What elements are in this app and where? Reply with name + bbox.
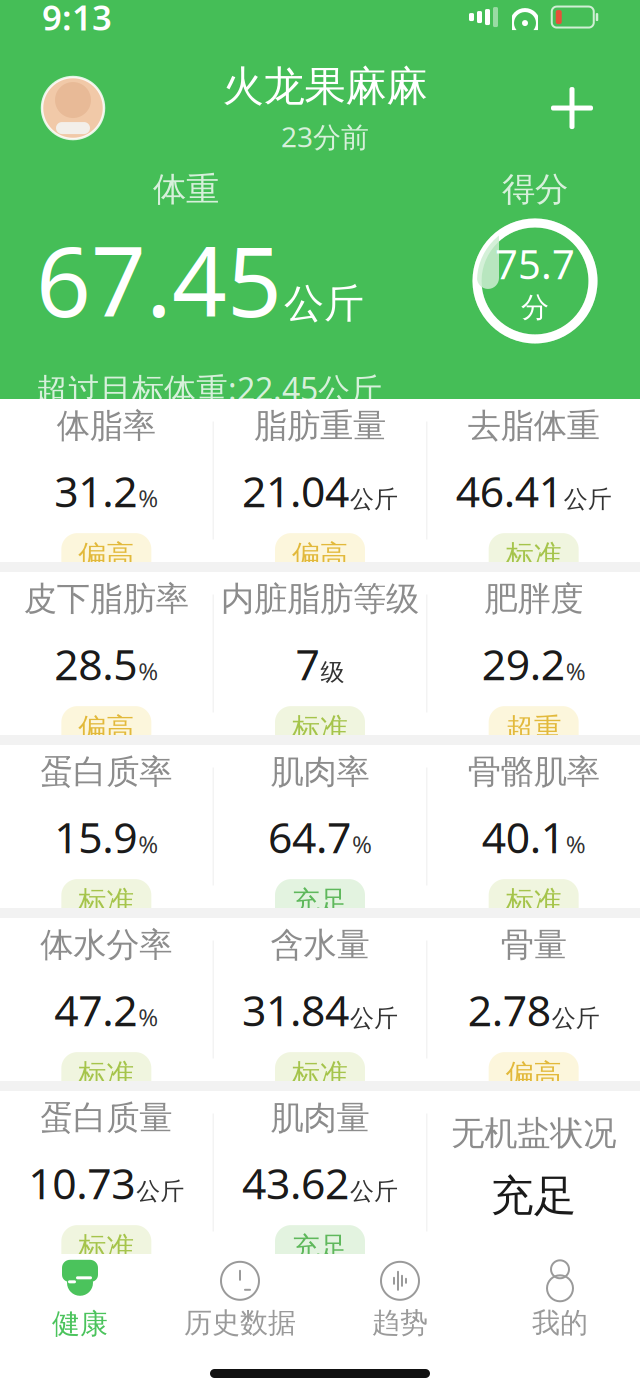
staticText: 40.1 xyxy=(482,808,565,865)
staticText: 公斤 xyxy=(564,485,612,514)
staticText: 偏高 xyxy=(506,1057,562,1091)
staticText: % xyxy=(138,482,158,514)
staticText: 公斤 xyxy=(350,1004,398,1033)
button[interactable]: 骨骼肌率 xyxy=(427,745,640,908)
staticText: 内脏脂肪等级 xyxy=(221,578,419,619)
staticText: 31.84 xyxy=(242,981,349,1038)
staticText: 75.7 xyxy=(495,237,575,290)
staticText: 标准 xyxy=(78,1230,134,1264)
button[interactable]: 去脂体重 xyxy=(427,399,640,562)
staticText: 脂肪重量 xyxy=(254,405,386,446)
staticText: 历史数据 xyxy=(184,1306,296,1340)
staticText: % xyxy=(138,828,158,860)
button[interactable]: 趋势 xyxy=(320,1254,480,1346)
staticText: 蛋白质率 xyxy=(40,751,172,792)
button[interactable]: 肌肉率 xyxy=(214,745,426,908)
staticText: 肌肉率 xyxy=(270,751,369,792)
staticText: 超过目标体重:22.45公斤 xyxy=(36,367,382,410)
staticText: 2.78 xyxy=(468,981,551,1038)
staticText: 超重 xyxy=(506,711,562,745)
staticText: 骨骼肌率 xyxy=(468,751,600,792)
staticText: 公斤 xyxy=(350,1177,398,1206)
staticText: 趋势 xyxy=(372,1306,428,1340)
staticText: 28.5 xyxy=(54,635,137,692)
staticText: 无机盐状况 xyxy=(451,1113,616,1154)
staticText: % xyxy=(138,1001,158,1033)
staticText: 21.04 xyxy=(242,462,349,519)
staticText: 体脂率 xyxy=(57,405,156,446)
staticText: 体水分率 xyxy=(40,924,172,965)
staticText: 火龙果麻麻 xyxy=(222,61,427,112)
button[interactable]: 肌肉量 xyxy=(214,1091,426,1254)
staticText: 67.45 xyxy=(36,216,282,343)
staticText: 去脂体重 xyxy=(468,405,600,446)
staticText: 充足 xyxy=(491,1170,577,1222)
button[interactable]: 健康 xyxy=(0,1254,160,1346)
staticText: 标准 xyxy=(292,711,348,745)
staticText: 标准 xyxy=(78,1057,134,1091)
staticText: 公斤 xyxy=(136,1177,184,1206)
staticText: 分 xyxy=(521,290,549,325)
staticText: 7 xyxy=(295,635,319,692)
staticText: 公斤 xyxy=(552,1004,600,1033)
staticText: 46.41 xyxy=(456,462,563,519)
staticText: 15.9 xyxy=(54,808,137,865)
staticText: 标准 xyxy=(506,538,562,572)
staticText: 偏高 xyxy=(78,711,134,745)
staticText: 标准 xyxy=(292,1057,348,1091)
button[interactable]: 添加 xyxy=(544,80,600,136)
button[interactable]: 体脂率 xyxy=(0,399,213,562)
staticText: 偏高 xyxy=(292,538,348,572)
button[interactable]: 蛋白质率 xyxy=(0,745,213,908)
staticText: 29.2 xyxy=(482,635,565,692)
staticText: 10.73 xyxy=(28,1154,135,1211)
staticText: 得分 xyxy=(502,169,568,210)
staticText: 充足 xyxy=(292,884,348,918)
button[interactable]: 蛋白质量 xyxy=(0,1091,213,1254)
staticText: 我的 xyxy=(532,1306,588,1340)
staticText: 23分前 xyxy=(281,118,369,155)
staticText: % xyxy=(352,828,372,860)
staticText: 含水量 xyxy=(270,924,369,965)
button[interactable]: 肥胖度 xyxy=(427,572,640,735)
staticText: 充足 xyxy=(292,1230,348,1264)
button[interactable]: 我的 xyxy=(480,1254,640,1346)
staticText: % xyxy=(138,655,158,687)
staticText: 级 xyxy=(320,658,344,687)
button[interactable]: 含水量 xyxy=(214,918,426,1081)
staticText: 47.2 xyxy=(54,981,137,1038)
staticText: % xyxy=(566,655,586,687)
staticText: 31.2 xyxy=(54,462,137,519)
button[interactable]: 皮下脂肪率 xyxy=(0,572,213,735)
button[interactable]: 历史数据 xyxy=(160,1254,320,1346)
staticText: % xyxy=(566,828,586,860)
staticText: 骨量 xyxy=(501,924,567,965)
staticText: 皮下脂肪率 xyxy=(24,578,189,619)
staticText: 64.7 xyxy=(268,808,351,865)
staticText: 标准 xyxy=(506,884,562,918)
staticText: 公斤 xyxy=(350,485,398,514)
staticText: 蛋白质量 xyxy=(40,1097,172,1138)
staticText: 9:13 xyxy=(42,0,112,40)
button[interactable]: 骨量 xyxy=(427,918,640,1081)
button[interactable]: 内脏脂肪等级 xyxy=(214,572,426,735)
staticText: 偏高 xyxy=(78,538,134,572)
button[interactable]: 脂肪重量 xyxy=(214,399,426,562)
button[interactable]: 无机盐状况 xyxy=(427,1091,640,1254)
staticText: 肥胖度 xyxy=(484,578,583,619)
button[interactable]: 体水分率 xyxy=(0,918,213,1081)
staticText: 肌肉量 xyxy=(270,1097,369,1138)
staticText: 43.62 xyxy=(242,1154,349,1211)
staticText: 公斤 xyxy=(284,279,364,328)
staticText: 健康 xyxy=(52,1307,108,1341)
button[interactable]: 个人头像 xyxy=(40,75,106,141)
staticText: 体重 xyxy=(153,169,219,210)
staticText: 标准 xyxy=(78,884,134,918)
